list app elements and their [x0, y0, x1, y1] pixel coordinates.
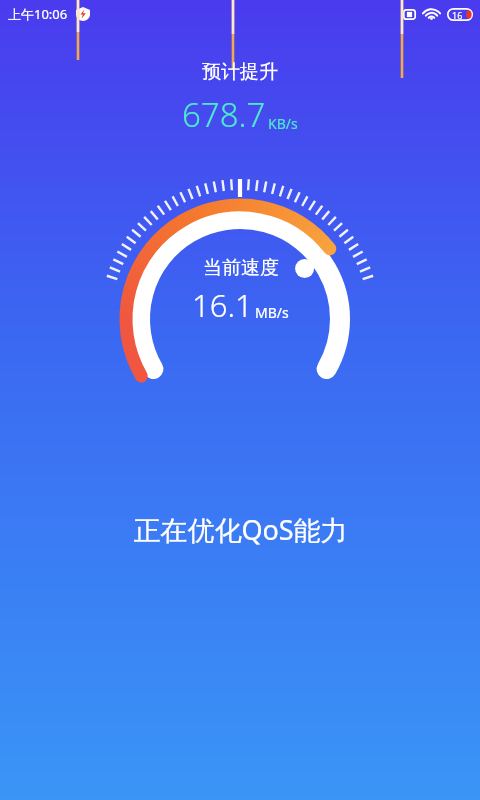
staticText: 正在优化QoS能力 — [133, 511, 348, 548]
button[interactable]: 正在优化QoS能力 — [109, 505, 372, 554]
other: Security — [76, 7, 90, 21]
staticText: 678.7 — [182, 92, 266, 137]
staticText: 预计提升 — [202, 60, 278, 84]
staticText: KB/s — [268, 114, 298, 133]
staticText: 当前速度 — [203, 256, 279, 280]
staticText: 上午10:06 — [8, 5, 68, 23]
staticText: 16.1 — [192, 284, 253, 326]
staticText: 16 — [452, 9, 463, 21]
staticText: MB/s — [255, 303, 289, 322]
